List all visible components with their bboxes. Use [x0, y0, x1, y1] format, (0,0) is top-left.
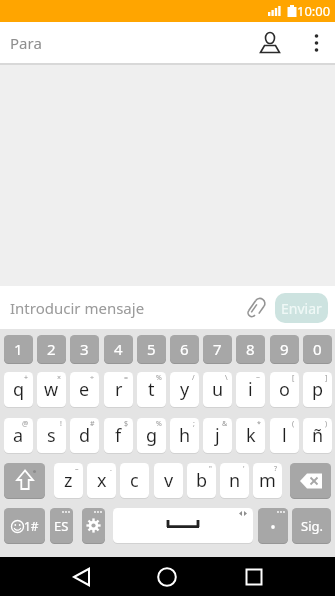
staticText: +	[24, 373, 29, 383]
button[interactable]: g	[137, 418, 166, 453]
button[interactable]: a	[4, 418, 33, 453]
button[interactable]: y	[170, 372, 199, 407]
staticText: j	[215, 423, 220, 448]
staticText: t	[148, 377, 155, 402]
staticText: 0	[313, 339, 322, 359]
staticText: .	[110, 464, 112, 474]
button[interactable]: l	[270, 418, 299, 453]
button[interactable]: n	[220, 463, 249, 498]
button[interactable]: 3	[70, 335, 99, 363]
staticText: o	[279, 377, 290, 402]
button[interactable]	[139, 557, 195, 596]
staticText: u	[212, 377, 224, 402]
button[interactable]: j	[203, 418, 232, 453]
staticText: #	[90, 419, 95, 429]
button[interactable]: Sig.	[292, 508, 331, 543]
button[interactable]: i	[236, 372, 265, 407]
staticText: ×	[57, 373, 62, 383]
staticText: 7	[213, 339, 222, 359]
button[interactable]	[226, 557, 282, 596]
staticText: l	[282, 423, 287, 448]
button[interactable]: w	[37, 372, 66, 407]
button[interactable]: v	[154, 463, 183, 498]
button[interactable]: t	[137, 372, 166, 407]
staticText: i	[248, 377, 253, 402]
button[interactable]: p	[303, 372, 332, 407]
button[interactable]	[241, 22, 298, 63]
staticText: y	[180, 377, 190, 402]
button[interactable]	[258, 508, 288, 543]
staticText: Para	[10, 33, 42, 53]
button[interactable]	[54, 557, 110, 596]
staticText: "	[209, 464, 212, 474]
button[interactable]: o	[270, 372, 299, 407]
button[interactable]: 6	[170, 335, 199, 363]
staticText: ES	[54, 517, 69, 535]
staticText: @	[22, 419, 29, 429]
button[interactable]: b	[187, 463, 216, 498]
staticText: w	[44, 377, 59, 402]
staticText: q	[13, 377, 25, 402]
staticText: [	[292, 373, 295, 383]
button[interactable]: 0	[303, 335, 332, 363]
staticText: Introducir mensaje	[10, 298, 145, 318]
button[interactable]: s	[37, 418, 66, 453]
staticText: s	[47, 423, 56, 448]
staticText: ~	[256, 373, 261, 383]
button[interactable]: 1	[4, 335, 33, 363]
button[interactable]: ES	[50, 508, 73, 543]
staticText: n	[229, 468, 241, 493]
staticText: ñ	[312, 423, 324, 448]
button[interactable]	[290, 463, 331, 498]
staticText: Sig.	[301, 517, 323, 535]
button[interactable]: 2	[37, 335, 66, 363]
staticText: !	[60, 419, 62, 429]
staticText: 5	[147, 339, 156, 359]
staticText: ÷	[90, 373, 95, 383]
button[interactable]: r	[104, 372, 133, 407]
button[interactable]: 9	[270, 335, 299, 363]
button[interactable]: 5	[137, 335, 166, 363]
staticText: *	[257, 419, 261, 429]
staticText: %	[156, 373, 162, 383]
button[interactable]: d	[70, 418, 99, 453]
button[interactable]: Enviar	[275, 293, 328, 323]
button[interactable]: c	[120, 463, 149, 498]
staticText: h	[179, 423, 191, 448]
staticText: z	[64, 468, 73, 493]
button[interactable]: 1#	[4, 508, 45, 543]
button[interactable]: e	[70, 372, 99, 407]
staticText: g	[146, 423, 158, 448]
button[interactable]	[242, 286, 272, 329]
staticText: –	[75, 464, 79, 474]
button[interactable]	[4, 463, 45, 498]
staticText: e	[79, 377, 90, 402]
staticText: )	[325, 419, 328, 429]
button[interactable]	[113, 508, 253, 543]
staticText: \	[225, 373, 228, 383]
button[interactable]: h	[170, 418, 199, 453]
staticText: b	[196, 468, 208, 493]
button[interactable]: 7	[203, 335, 232, 363]
staticText: r	[115, 377, 123, 402]
staticText: f	[115, 423, 122, 448]
button[interactable]: m	[253, 463, 282, 498]
staticText: d	[79, 423, 91, 448]
staticText: ]	[325, 373, 328, 383]
button[interactable]: u	[203, 372, 232, 407]
staticText: k	[246, 423, 256, 448]
staticText: 1	[14, 339, 23, 359]
button[interactable]: x	[87, 463, 116, 498]
button[interactable]	[298, 22, 335, 63]
button[interactable]: f	[104, 418, 133, 453]
staticText: 3	[80, 339, 89, 359]
button[interactable]: k	[236, 418, 265, 453]
button[interactable]: q	[4, 372, 33, 407]
button[interactable]: ñ	[303, 418, 332, 453]
staticText: '	[243, 464, 245, 474]
button[interactable]: 8	[236, 335, 265, 363]
button[interactable]: z	[54, 463, 83, 498]
staticText: c	[130, 468, 139, 493]
button[interactable]: 4	[104, 335, 133, 363]
button[interactable]	[82, 508, 105, 543]
